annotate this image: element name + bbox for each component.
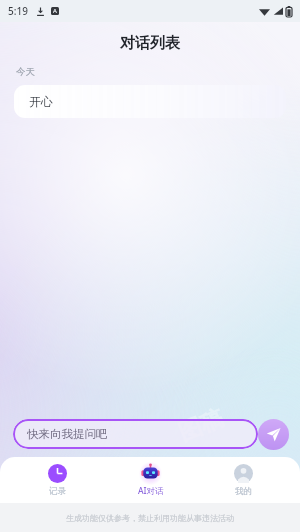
staticText: 记录 [49, 486, 66, 497]
button[interactable]: 我的 [197, 460, 290, 501]
button[interactable]: 快来向我提问吧 [13, 419, 258, 449]
staticText: AI对话 [138, 485, 164, 497]
staticText: A [53, 7, 57, 15]
staticText: 我的 [235, 486, 252, 497]
button[interactable]: 记录 [10, 460, 104, 501]
button[interactable]: 开心 [14, 85, 286, 118]
staticText: 图稿 [174, 403, 228, 447]
staticText: 快来向我提问吧 [27, 427, 108, 441]
staticText: 生成功能仅供参考，禁止利用功能从事违法活动 [66, 513, 234, 523]
staticText: 开心 [29, 94, 53, 109]
staticText: 对话列表 [120, 34, 180, 53]
staticText: 今天 [16, 66, 35, 78]
button[interactable]: 发送 [258, 419, 289, 450]
button[interactable]: AI对话 [104, 459, 197, 501]
staticText: 5:19 [8, 4, 28, 18]
